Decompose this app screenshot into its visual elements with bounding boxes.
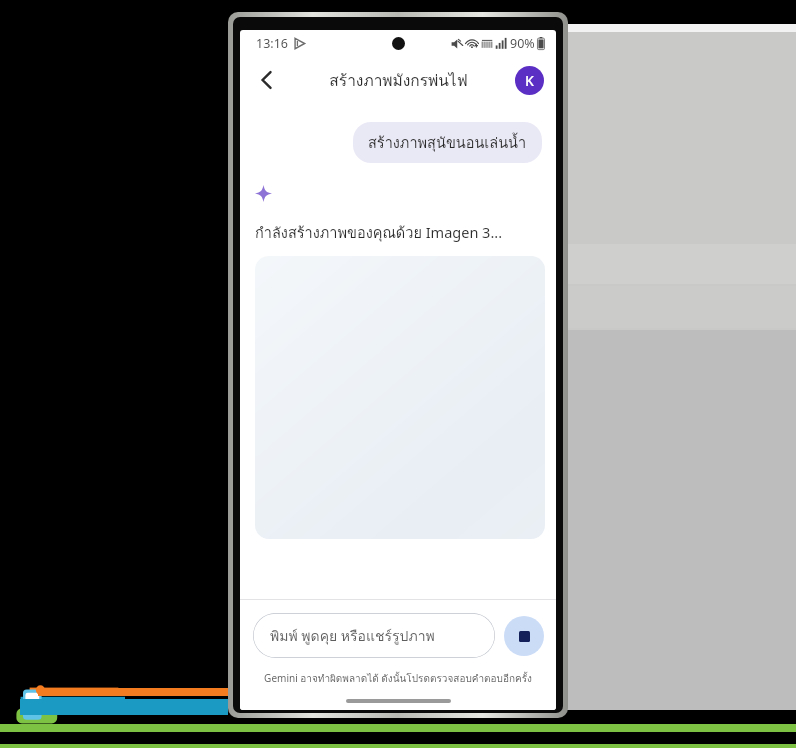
staticText: สร้างภาพสุนัขนอนเล่นน้ำ	[368, 131, 527, 154]
staticText: 90%	[510, 35, 535, 52]
staticText: Gemini อาจทำผิดพลาดได้ ดังนั้นโปรดตรวจสอ…	[240, 671, 556, 687]
staticText: สร้างภาพมังกรพ่นไฟ	[329, 68, 468, 93]
staticText: กำลังสร้างภาพของคุณด้วย Imagen 3...	[255, 221, 503, 244]
button[interactable]: Account	[515, 66, 544, 95]
button[interactable]: Stop	[504, 616, 544, 656]
button[interactable]	[255, 256, 545, 539]
button[interactable]: Back	[248, 61, 286, 99]
staticText: 13:16	[256, 35, 288, 52]
button[interactable]: สร้างภาพสุนัขนอนเล่นน้ำ	[353, 122, 542, 163]
staticText: K	[525, 71, 534, 90]
staticText: พิมพ์ พูดคุย หรือแชร์รูปภาพ	[270, 625, 435, 647]
button[interactable]: พิมพ์ พูดคุย หรือแชร์รูปภาพ	[253, 613, 495, 658]
